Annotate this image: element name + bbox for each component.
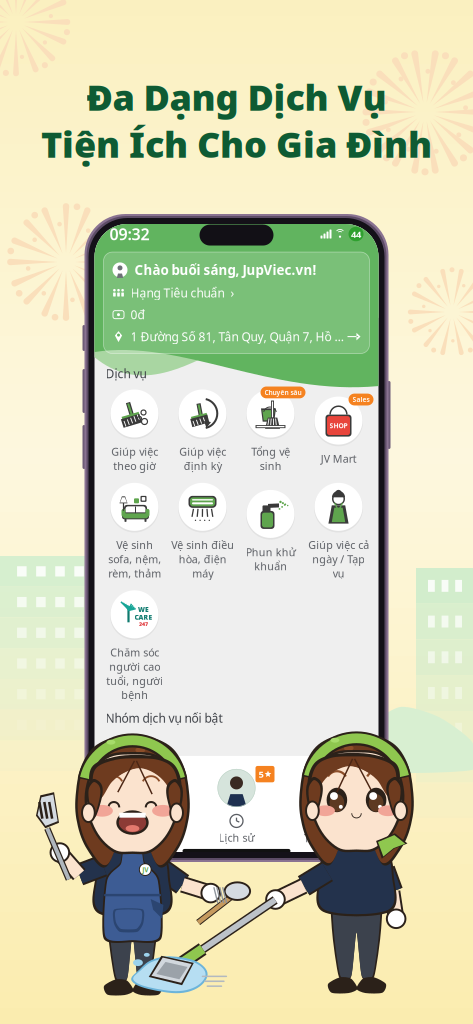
staticText: 1 Đường Số 81, Tân Quy, Quận 7, Hồ C...	[130, 329, 343, 344]
staticText: JV	[142, 866, 148, 874]
staticText: Đa Dạng Dịch Vụ	[86, 73, 386, 121]
button[interactable]: Vệ sinh sofa, nệm, rèm, thảm	[100, 481, 168, 580]
staticText: 0đ	[130, 307, 144, 323]
button[interactable]: SHOP	[304, 395, 372, 466]
staticText: 247	[139, 621, 148, 628]
staticText: Nhóm dịch vụ nổi bật	[105, 710, 222, 726]
staticText: Hạng Tiêu chuẩn ›	[130, 285, 234, 301]
staticText: Giúp việc định kỳ	[179, 444, 226, 473]
staticText: Lịch sử	[218, 830, 254, 845]
staticText: Phun khử khuẩn	[245, 545, 295, 573]
button[interactable]: Thông báo	[284, 814, 378, 845]
staticText: Giúp việc theo giờ	[111, 444, 158, 473]
button[interactable]: Giúp việc định kỳ	[168, 387, 236, 473]
staticText: Chuyên sâu	[264, 388, 301, 397]
staticText: Trang chủ	[116, 830, 167, 845]
staticText: CARE	[134, 613, 152, 622]
button[interactable]: Phun khử khuẩn	[236, 488, 304, 573]
staticText: 44	[351, 228, 361, 240]
staticText: 09:32	[109, 223, 149, 245]
staticText: Chăm sóc người cao tuổi, người bệnh	[106, 645, 163, 702]
staticText: Chào buổi sáng, JupViec.vn!	[134, 261, 316, 279]
staticText: 5	[258, 768, 263, 780]
staticText: SHOP	[329, 421, 347, 430]
button[interactable]: WE	[100, 588, 168, 702]
staticText: Vệ sinh điều hòa, điện máy	[171, 538, 234, 580]
staticText: JV Mart	[320, 452, 356, 466]
staticText: Sales	[352, 395, 369, 404]
staticText: Vệ sinh sofa, nệm, rèm, thảm	[108, 538, 161, 580]
button[interactable]: Lịch sử	[189, 814, 284, 845]
staticText: Tiện Ích Cho Gia Đình	[41, 120, 432, 168]
button[interactable]: Giúp việc cả ngày / Tạp vụ	[304, 481, 372, 580]
staticText: Thông báo	[304, 831, 359, 845]
staticText: Giúp việc cả ngày / Tạp vụ	[308, 538, 369, 580]
staticText: WE	[138, 605, 149, 614]
button[interactable]: Trang chủ	[94, 814, 189, 845]
staticText: Dịch vụ	[105, 366, 146, 381]
button[interactable]: Chuyên sâu	[236, 387, 304, 473]
button[interactable]: Vệ sinh điều hòa, điện máy	[168, 481, 236, 580]
button[interactable]: Giúp việc theo giờ	[100, 387, 168, 473]
staticText: Tổng vệ sinh	[251, 444, 290, 473]
